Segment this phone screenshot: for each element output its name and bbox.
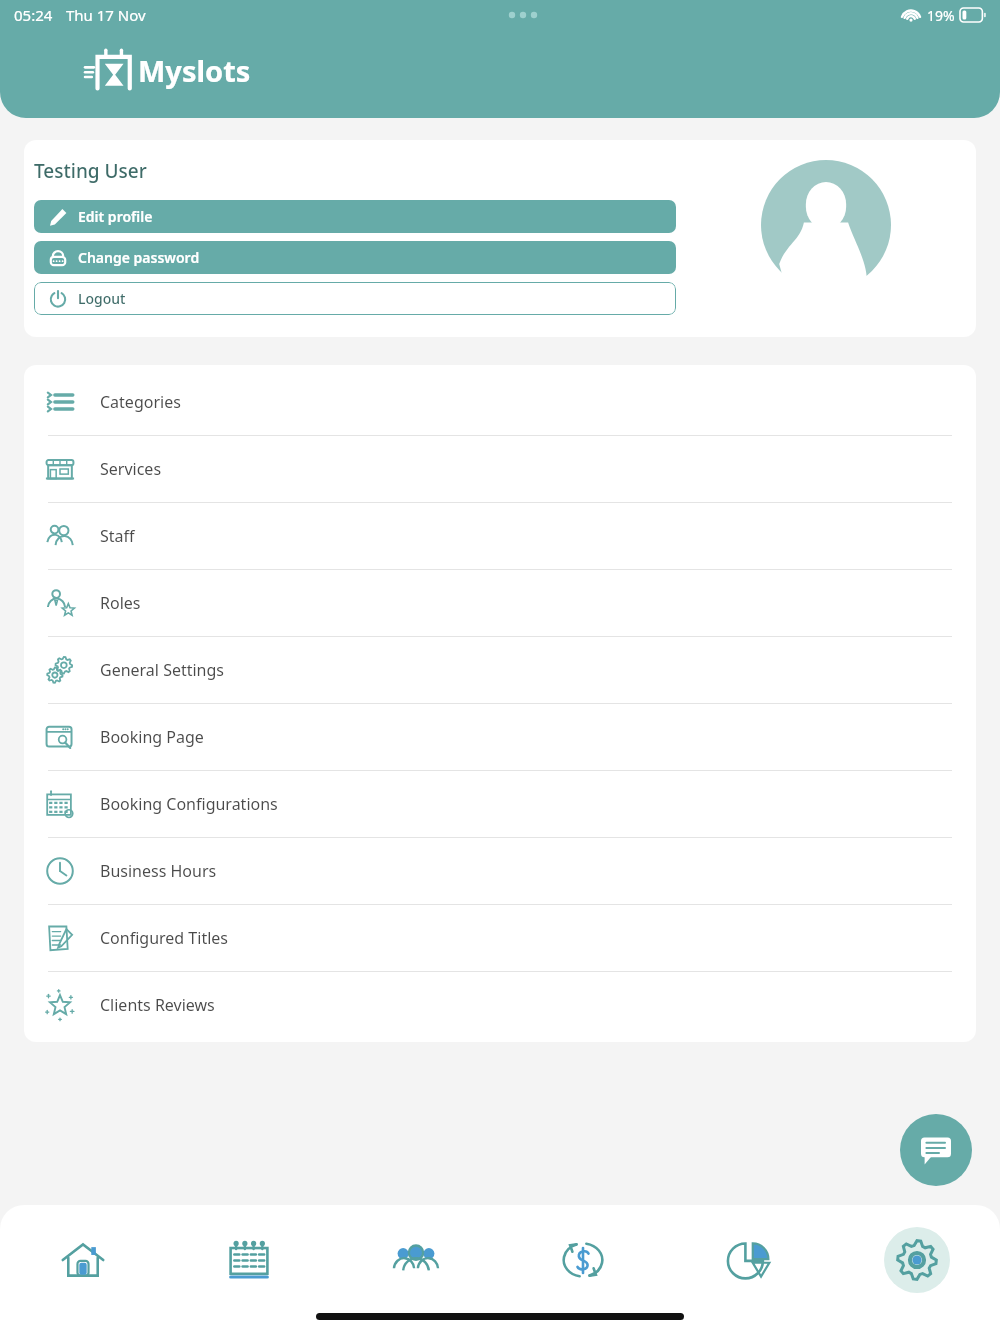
button[interactable]: Change password — [34, 241, 676, 274]
button[interactable]: Edit profile — [34, 200, 676, 233]
button[interactable]: Business Hours — [24, 838, 976, 904]
staticText: Configured Titles — [100, 927, 228, 949]
button[interactable]: Messages — [900, 1114, 972, 1186]
staticText: Thu 17 Nov — [66, 5, 146, 25]
button[interactable]: Clients — [332, 1205, 499, 1315]
staticText: Roles — [100, 592, 141, 614]
button[interactable]: Categories — [24, 369, 976, 435]
button[interactable]: Calendar — [166, 1205, 332, 1315]
staticText: Myslots — [138, 51, 251, 90]
button[interactable]: Logout — [34, 282, 676, 315]
staticText: 05:24 — [14, 5, 53, 25]
staticText: Booking Configurations — [100, 793, 278, 815]
staticText: Clients Reviews — [100, 994, 215, 1016]
staticText: Services — [100, 458, 162, 480]
button[interactable]: Reports — [666, 1205, 833, 1315]
button[interactable]: Configured Titles — [24, 905, 976, 971]
staticText: Staff — [100, 525, 135, 547]
button[interactable]: Clients Reviews — [24, 972, 976, 1038]
staticText: Booking Page — [100, 726, 204, 748]
staticText: Categories — [100, 391, 181, 413]
button[interactable]: Settings — [833, 1205, 1000, 1315]
staticText: 19% — [927, 6, 955, 25]
button[interactable]: Home — [0, 1205, 166, 1315]
button[interactable]: Services — [24, 436, 976, 502]
staticText: Edit profile — [78, 207, 153, 226]
staticText: Change password — [78, 248, 200, 267]
staticText: Testing User — [34, 158, 147, 184]
staticText: General Settings — [100, 659, 225, 681]
button[interactable]: Booking Configurations — [24, 771, 976, 837]
button[interactable]: Staff — [24, 503, 976, 569]
button[interactable]: Roles — [24, 570, 976, 636]
button[interactable]: Payments — [499, 1205, 666, 1315]
button[interactable]: Booking Page — [24, 704, 976, 770]
staticText: Logout — [78, 289, 126, 308]
staticText: Business Hours — [100, 860, 217, 882]
button[interactable]: General Settings — [24, 637, 976, 703]
